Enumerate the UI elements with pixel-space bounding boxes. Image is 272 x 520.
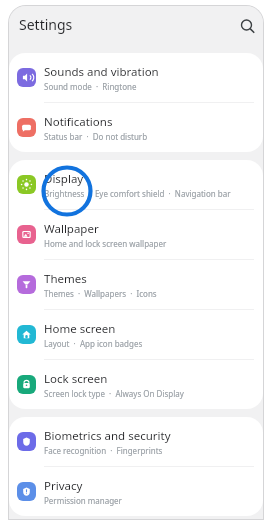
- button[interactable]: Biometrics and security: [9, 417, 263, 466]
- staticText: Lock screen: [44, 371, 108, 387]
- staticText: Biometrics and security: [44, 428, 171, 444]
- button[interactable]: Notifications: [9, 103, 263, 152]
- button[interactable]: Themes: [9, 260, 263, 309]
- staticText: Brightness · Eye comfort shield · Naviga…: [44, 188, 231, 199]
- staticText: Home screen: [44, 321, 116, 337]
- staticText: Settings: [19, 15, 73, 34]
- button[interactable]: Search settings: [233, 11, 261, 39]
- staticText: Permission manager: [44, 495, 122, 506]
- staticText: Face recognition · Fingerprints: [44, 445, 163, 456]
- staticText: Home and lock screen wallpaper: [44, 238, 167, 249]
- staticText: Screen lock type · Always On Display: [44, 388, 184, 399]
- staticText: Sounds and vibration: [44, 64, 159, 80]
- staticText: Themes · Wallpapers · Icons: [44, 288, 157, 299]
- staticText: Status bar · Do not disturb: [44, 131, 148, 142]
- staticText: Themes: [44, 271, 87, 287]
- staticText: Privacy: [44, 478, 83, 494]
- button[interactable]: Wallpaper: [9, 210, 263, 259]
- staticText: Layout · App icon badges: [44, 338, 143, 349]
- staticText: Wallpaper: [44, 221, 99, 237]
- staticText: Notifications: [44, 114, 113, 130]
- staticText: Display: [44, 171, 84, 187]
- button[interactable]: Lock screen: [9, 360, 263, 409]
- button[interactable]: Sounds and vibration: [9, 53, 263, 102]
- staticText: Sound mode · Ringtone: [44, 81, 137, 92]
- button[interactable]: Privacy: [9, 467, 263, 516]
- button[interactable]: Display: [9, 160, 263, 209]
- button[interactable]: Home screen: [9, 310, 263, 359]
